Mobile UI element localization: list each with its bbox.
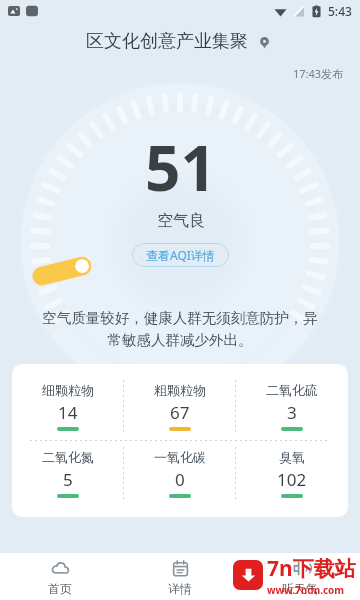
staticText: 102 [277, 468, 307, 491]
button[interactable]: 粗颗粒物 [124, 374, 236, 440]
staticText: 0 [175, 468, 185, 491]
button[interactable]: 听天气 [240, 553, 360, 600]
staticText: www.7ndn.com [267, 583, 345, 597]
button[interactable]: 详情 [120, 553, 240, 600]
staticText: 51 [145, 125, 216, 209]
staticText: 查看AQI详情 [146, 247, 215, 263]
staticText: 5 [63, 468, 73, 491]
staticText: 17:43发布 [293, 66, 344, 81]
staticText: 首页 [48, 581, 72, 596]
button[interactable]: 二氧化硫 [236, 374, 348, 440]
button[interactable]: 一氧化碳 [124, 441, 236, 507]
staticText: 空气良 [157, 211, 205, 231]
staticText: 5:43 [328, 3, 352, 19]
staticText: 详情 [168, 581, 192, 596]
button[interactable]: 二氧化氮 [12, 441, 124, 507]
button[interactable]: 细颗粒物 [12, 374, 124, 440]
staticText: 听天气 [282, 581, 318, 596]
staticText: 细颗粒物 [42, 382, 94, 398]
staticText: 粗颗粒物 [154, 382, 206, 398]
button[interactable]: Location [254, 32, 274, 52]
staticText: 臭氧 [279, 449, 305, 465]
button[interactable]: 查看AQI详情 [132, 243, 229, 267]
staticText: 一氧化碳 [154, 449, 206, 465]
button[interactable]: 臭氧 [236, 441, 348, 507]
staticText: 3 [287, 401, 297, 424]
staticText: 14 [58, 401, 78, 424]
staticText: 区文化创意产业集聚 [86, 30, 248, 53]
staticText: 67 [170, 401, 190, 424]
button[interactable]: 首页 [0, 553, 120, 600]
staticText: 7n下载站 [267, 554, 356, 583]
staticText: 二氧化氮 [42, 449, 94, 465]
staticText: 二氧化硫 [266, 382, 318, 398]
staticText: 空气质量较好，健康人群无须刻意防护，异常敏感人群减少外出。 [36, 309, 324, 350]
